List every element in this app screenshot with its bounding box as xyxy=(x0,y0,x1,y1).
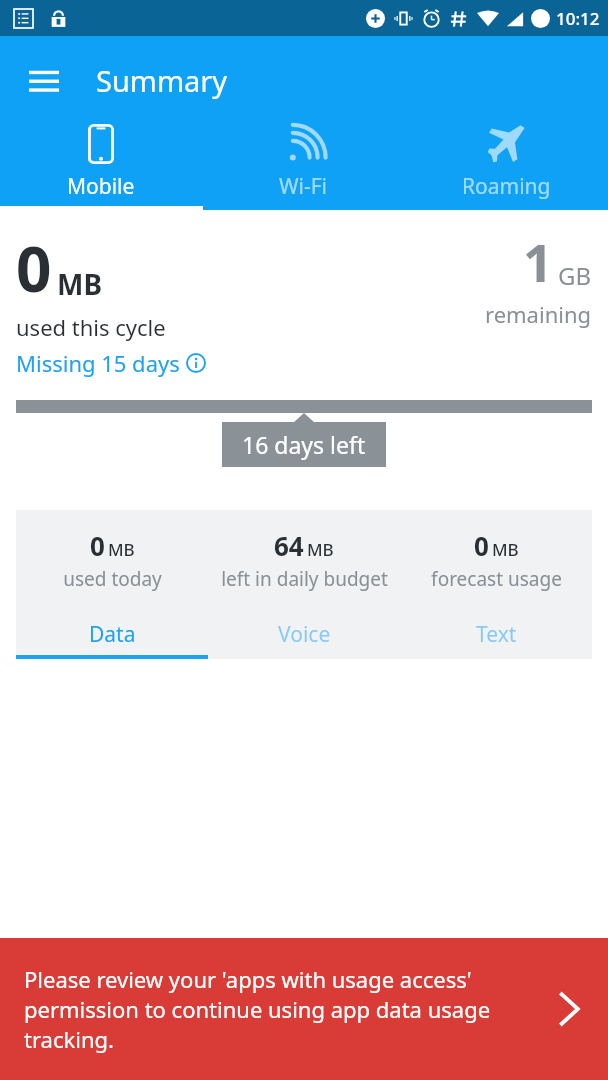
button[interactable]: Mobile xyxy=(0,124,202,201)
button[interactable]: Voice xyxy=(208,620,400,649)
staticText: Text xyxy=(476,620,517,649)
staticText: 0 xyxy=(90,528,105,563)
button[interactable]: Wi-Fi xyxy=(202,124,405,201)
staticText: Voice xyxy=(278,620,331,649)
staticText: used this cycle xyxy=(16,312,166,342)
staticText: MB xyxy=(492,538,519,561)
button[interactable]: Missing 15 days xyxy=(16,348,206,378)
button[interactable]: Please review your 'apps with usage acce… xyxy=(0,938,608,1080)
staticText: MB xyxy=(57,265,103,303)
staticText: Summary xyxy=(96,61,228,100)
staticText: used today xyxy=(63,566,162,592)
staticText: Mobile xyxy=(67,172,135,201)
staticText: Roaming xyxy=(462,172,551,201)
staticText: remaining xyxy=(485,299,592,329)
staticText: 16 days left xyxy=(242,429,366,460)
button[interactable]: 64 xyxy=(208,528,400,592)
staticText: 10:12 xyxy=(556,7,600,30)
button[interactable]: Text xyxy=(400,620,592,649)
staticText: forecast usage xyxy=(431,566,562,592)
staticText: MB xyxy=(108,538,135,561)
staticText: Data xyxy=(89,620,136,649)
staticText: Please review your 'apps with usage acce… xyxy=(24,964,516,1054)
staticText: GB xyxy=(558,259,592,292)
button[interactable]: Data xyxy=(16,620,208,649)
staticText: 0 xyxy=(16,226,52,310)
button[interactable]: 16 days left xyxy=(242,429,366,460)
staticText: 1 xyxy=(523,226,553,297)
staticText: MB xyxy=(307,538,334,561)
staticText: Missing 15 days xyxy=(16,348,180,378)
button[interactable]: Open navigation menu xyxy=(22,58,66,102)
button[interactable]: 0 xyxy=(400,528,592,592)
staticText: 64 xyxy=(274,528,304,563)
staticText: Wi-Fi xyxy=(279,172,328,201)
button[interactable]: Roaming xyxy=(405,124,608,201)
button[interactable]: 0 xyxy=(16,528,208,592)
staticText: left in daily budget xyxy=(221,566,388,592)
other: Open usage access settings xyxy=(528,938,608,1080)
staticText: 0 xyxy=(474,528,489,563)
